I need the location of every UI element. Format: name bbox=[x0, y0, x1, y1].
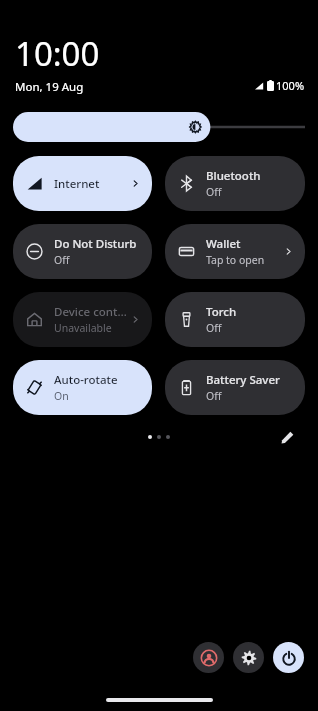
staticText: Device contro.. bbox=[54, 304, 130, 320]
button[interactable]: Torch bbox=[165, 292, 305, 347]
button[interactable]: User profile bbox=[193, 642, 224, 673]
staticText: Mon, 19 Aug bbox=[15, 79, 84, 95]
staticText: Unavailable bbox=[54, 321, 112, 335]
button[interactable]: Internet bbox=[13, 156, 152, 211]
button[interactable]: Settings bbox=[233, 642, 264, 673]
staticText: Wallet bbox=[206, 236, 241, 252]
button[interactable]: Brightness bbox=[13, 112, 305, 142]
button[interactable]: Do Not Disturb bbox=[13, 224, 152, 279]
staticText: 10:00 bbox=[15, 31, 100, 76]
staticText: Auto-rotate bbox=[54, 372, 118, 388]
button[interactable]: Device contro.. bbox=[13, 292, 152, 347]
staticText: On bbox=[54, 389, 69, 403]
staticText: Battery Saver bbox=[206, 372, 280, 388]
staticText: Off bbox=[206, 321, 222, 335]
button[interactable]: Auto-rotate bbox=[13, 360, 152, 415]
button[interactable]: Edit tiles bbox=[275, 426, 299, 448]
button[interactable]: Bluetooth bbox=[165, 156, 305, 211]
staticText: Off bbox=[206, 185, 222, 199]
button[interactable]: Battery Saver bbox=[165, 360, 305, 415]
staticText: Torch bbox=[206, 304, 237, 320]
staticText: Bluetooth bbox=[206, 168, 261, 184]
staticText: Internet bbox=[54, 176, 100, 192]
button[interactable]: Power bbox=[273, 642, 304, 673]
button[interactable]: Wallet bbox=[165, 224, 305, 279]
staticText: Off bbox=[54, 253, 70, 267]
staticText: Tap to open bbox=[206, 253, 265, 267]
staticText: Off bbox=[206, 389, 222, 403]
staticText: Do Not Disturb bbox=[54, 236, 137, 252]
staticText: 100% bbox=[276, 78, 305, 93]
